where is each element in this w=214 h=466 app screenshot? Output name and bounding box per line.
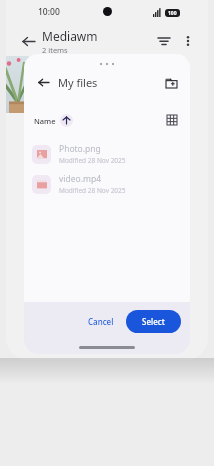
staticText: 100 [168,10,177,17]
staticText: 10:00 [38,6,60,18]
button[interactable]: Select [126,310,181,333]
staticText: video.mp4 [59,173,101,185]
staticText: Cancel [88,316,114,327]
button[interactable]: Create new folder [160,71,182,93]
button[interactable]: Sort [152,29,176,53]
button[interactable]: Back [16,29,40,53]
staticText: Mediawm [42,28,98,44]
button[interactable]: Photo.png [24,139,190,169]
staticText: Name [34,116,56,126]
button[interactable]: More options [176,29,200,53]
button[interactable]: video.mp4 [24,169,190,199]
button[interactable]: Grid view [162,110,182,130]
staticText: 2 items [42,45,68,55]
staticText: My files [58,75,98,90]
staticText: Photo.png [59,143,101,155]
button[interactable]: Name [32,113,75,128]
button[interactable]: Cancel [81,311,121,332]
staticText: Modified 28 Nov 2025 [59,186,126,195]
staticText: Modified 28 Nov 2025 [59,156,126,165]
staticText: Select [142,316,165,327]
button[interactable]: Back [32,71,54,93]
